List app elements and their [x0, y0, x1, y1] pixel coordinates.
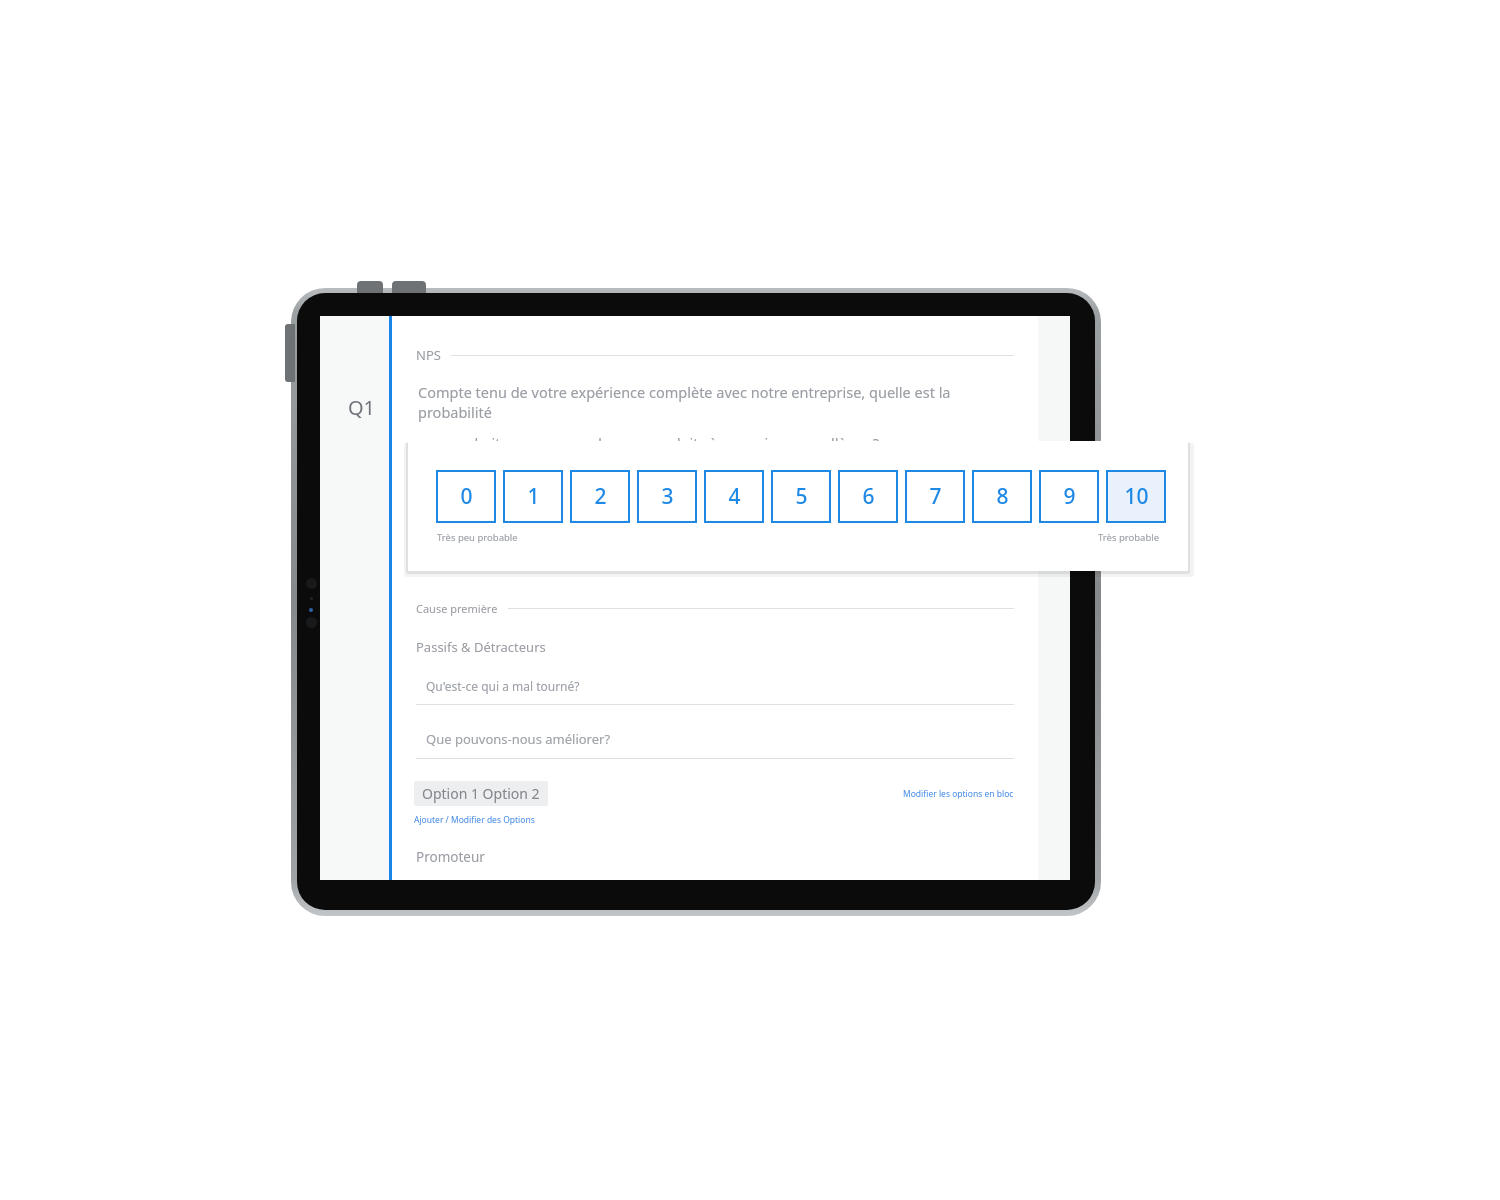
staticText: Passifs & Détracteurs [416, 638, 546, 656]
staticText: Cause première [416, 601, 498, 616]
button[interactable]: 10 [1106, 470, 1166, 523]
staticText: Très peu probable [437, 531, 518, 544]
staticText: Promoteur [416, 848, 485, 866]
staticText: Que pouvons-nous améliorer? [426, 730, 611, 748]
staticText: 2 [594, 482, 607, 511]
staticText: 4 [728, 482, 741, 511]
staticText: Q1 [348, 394, 376, 421]
button[interactable]: 9 [1039, 470, 1099, 523]
button[interactable]: Ajouter / Modifier des Options [414, 814, 535, 826]
button[interactable]: 4 [704, 470, 764, 523]
staticText: 0 [460, 482, 473, 511]
staticText: Option 1 Option 2 [422, 784, 540, 803]
button[interactable]: 5 [771, 470, 831, 523]
staticText: 3 [661, 482, 674, 511]
button[interactable]: 3 [637, 470, 697, 523]
button[interactable]: Modifier les options en bloc [903, 788, 1014, 800]
staticText: Qu'est-ce qui a mal tourné? [426, 678, 580, 694]
staticText: Compte tenu de votre expérience complète… [418, 382, 1022, 422]
button[interactable]: 0 [436, 470, 496, 523]
staticText: 1 [527, 482, 540, 511]
staticText: Ajouter / Modifier des Options [414, 814, 535, 826]
staticText: 9 [1063, 482, 1076, 511]
button[interactable]: Que pouvons-nous améliorer? [392, 730, 1038, 759]
staticText: 5 [795, 482, 808, 511]
staticText: Modifier les options en bloc [903, 788, 1014, 800]
staticText: vous souhaitez recommander nos produits … [414, 433, 879, 453]
button[interactable]: 7 [905, 470, 965, 523]
staticText: 7 [929, 482, 942, 511]
button[interactable]: 1 [503, 470, 563, 523]
staticText: Très probable [1098, 531, 1160, 544]
button[interactable]: Qu'est-ce qui a mal tourné? [392, 678, 1038, 705]
button[interactable]: 6 [838, 470, 898, 523]
staticText: 10 [1124, 482, 1149, 511]
button[interactable]: 8 [972, 470, 1032, 523]
button[interactable]: Option 1 Option 2 [414, 781, 548, 806]
staticText: 6 [862, 482, 875, 511]
staticText: 8 [996, 482, 1009, 511]
button[interactable]: 2 [570, 470, 630, 523]
staticText: NPS [416, 346, 441, 364]
